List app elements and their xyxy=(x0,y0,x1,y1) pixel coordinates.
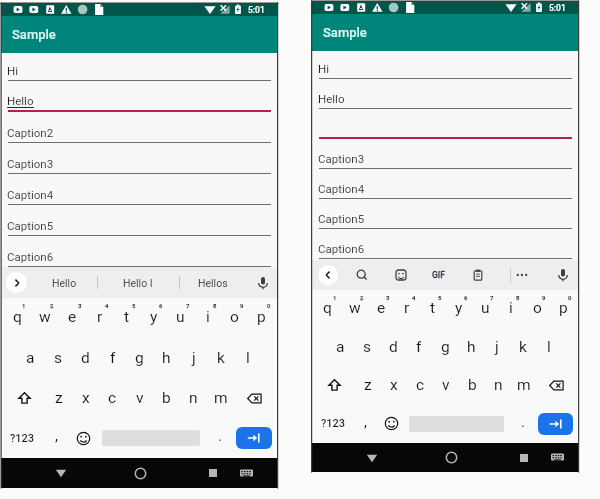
button[interactable]: Hi xyxy=(1,53,278,81)
button[interactable]: a xyxy=(16,338,44,378)
button[interactable]: Back xyxy=(312,260,343,290)
button[interactable]: e xyxy=(368,290,394,328)
button[interactable]: s xyxy=(44,338,72,378)
button[interactable]: Stickers xyxy=(381,260,420,290)
button[interactable]: Switch keyboard xyxy=(231,458,261,488)
button[interactable]: . xyxy=(508,404,537,443)
button[interactable]: n xyxy=(485,366,511,404)
button[interactable]: Search xyxy=(343,260,381,290)
button[interactable]: r xyxy=(394,290,420,328)
button[interactable]: Space xyxy=(98,418,204,458)
button[interactable]: l xyxy=(234,338,261,378)
button[interactable]: Emoji xyxy=(69,418,98,458)
button[interactable]: l xyxy=(536,328,562,366)
button[interactable]: w xyxy=(341,290,368,328)
button[interactable]: j xyxy=(484,328,510,366)
button[interactable]: f xyxy=(406,328,432,366)
button[interactable]: x xyxy=(72,378,99,418)
button[interactable]: i xyxy=(498,290,524,328)
button[interactable]: i xyxy=(194,298,221,338)
button[interactable]: Caption4 xyxy=(312,169,579,199)
button[interactable]: t xyxy=(113,298,140,338)
button[interactable]: o xyxy=(524,290,550,328)
button[interactable]: r xyxy=(86,298,113,338)
button[interactable]: Sample xyxy=(1,16,278,53)
button[interactable]: Backspace xyxy=(234,378,275,418)
button[interactable]: v xyxy=(433,366,459,404)
button[interactable]: GIF xyxy=(420,260,457,290)
button[interactable]: Hellos xyxy=(179,267,247,298)
button[interactable]: . xyxy=(204,418,235,458)
button[interactable]: Caption3 xyxy=(312,139,579,169)
button[interactable]: y xyxy=(446,290,472,328)
button[interactable]: Caption6 xyxy=(1,236,278,267)
button[interactable]: s xyxy=(354,328,380,366)
button[interactable]: z xyxy=(45,378,72,418)
button[interactable]: Caption3 xyxy=(1,143,278,174)
button[interactable]: x xyxy=(381,366,407,404)
button[interactable]: g xyxy=(432,328,458,366)
button[interactable]: Clipboard xyxy=(457,260,498,290)
button[interactable]: Hello xyxy=(1,81,278,112)
button[interactable]: g xyxy=(126,338,153,378)
button[interactable]: b xyxy=(153,378,180,418)
button[interactable]: Voice input xyxy=(247,267,278,298)
button[interactable]: Caption5 xyxy=(312,199,579,229)
button[interactable]: w xyxy=(31,298,59,338)
button[interactable]: ?123 xyxy=(1,418,44,458)
button[interactable]: ?123 xyxy=(312,404,354,443)
button[interactable]: Caption6 xyxy=(312,229,579,259)
button[interactable]: e xyxy=(59,298,86,338)
button[interactable]: Backspace xyxy=(537,366,576,404)
button[interactable]: m xyxy=(207,378,234,418)
button[interactable]: Shift xyxy=(3,378,45,418)
button[interactable]: Recents xyxy=(198,458,228,488)
button[interactable]: Hello xyxy=(32,267,97,298)
button[interactable]: Back xyxy=(41,458,81,488)
button[interactable]: k xyxy=(510,328,536,366)
button[interactable]: k xyxy=(207,338,234,378)
button[interactable]: o xyxy=(221,298,248,338)
button[interactable]: m xyxy=(511,366,537,404)
button[interactable]: v xyxy=(126,378,153,418)
button[interactable]: , xyxy=(44,418,69,458)
button[interactable]: t xyxy=(420,290,446,328)
button[interactable]: c xyxy=(407,366,433,404)
button[interactable]: j xyxy=(180,338,207,378)
button[interactable]: h xyxy=(153,338,180,378)
button[interactable]: d xyxy=(380,328,406,366)
button[interactable]: q xyxy=(314,290,341,328)
button[interactable]: Next field xyxy=(235,418,273,458)
button[interactable]: h xyxy=(458,328,484,366)
button[interactable]: Sample xyxy=(312,14,579,51)
button[interactable]: Caption5 xyxy=(1,205,278,236)
button[interactable]: z xyxy=(354,366,381,404)
button[interactable]: c xyxy=(99,378,126,418)
button[interactable]: Home xyxy=(431,443,471,472)
button[interactable]: a xyxy=(327,328,354,366)
button[interactable]: Shift xyxy=(314,366,354,404)
button[interactable]: , xyxy=(354,404,377,443)
button[interactable]: Back xyxy=(352,443,392,472)
button[interactable]: u xyxy=(167,298,194,338)
button[interactable]: Emoji xyxy=(377,404,405,443)
button[interactable]: q xyxy=(3,298,31,338)
button[interactable]: Caption2 xyxy=(1,112,278,143)
button[interactable]: p xyxy=(248,298,275,338)
button[interactable]: Hello xyxy=(312,79,579,109)
button[interactable]: f xyxy=(99,338,126,378)
button[interactable] xyxy=(312,109,579,139)
button[interactable]: Voice input xyxy=(546,260,579,290)
button[interactable]: p xyxy=(550,290,576,328)
button[interactable]: Hello I xyxy=(97,267,179,298)
button[interactable]: Recents xyxy=(509,443,539,472)
button[interactable]: b xyxy=(459,366,485,404)
button[interactable]: Switch keyboard xyxy=(542,443,572,472)
button[interactable]: Space xyxy=(405,404,508,443)
button[interactable]: Hi xyxy=(312,51,579,79)
button[interactable]: u xyxy=(472,290,498,328)
button[interactable]: y xyxy=(140,298,167,338)
button[interactable]: Next field xyxy=(537,404,574,443)
button[interactable]: d xyxy=(72,338,99,378)
button[interactable]: Caption4 xyxy=(1,174,278,205)
